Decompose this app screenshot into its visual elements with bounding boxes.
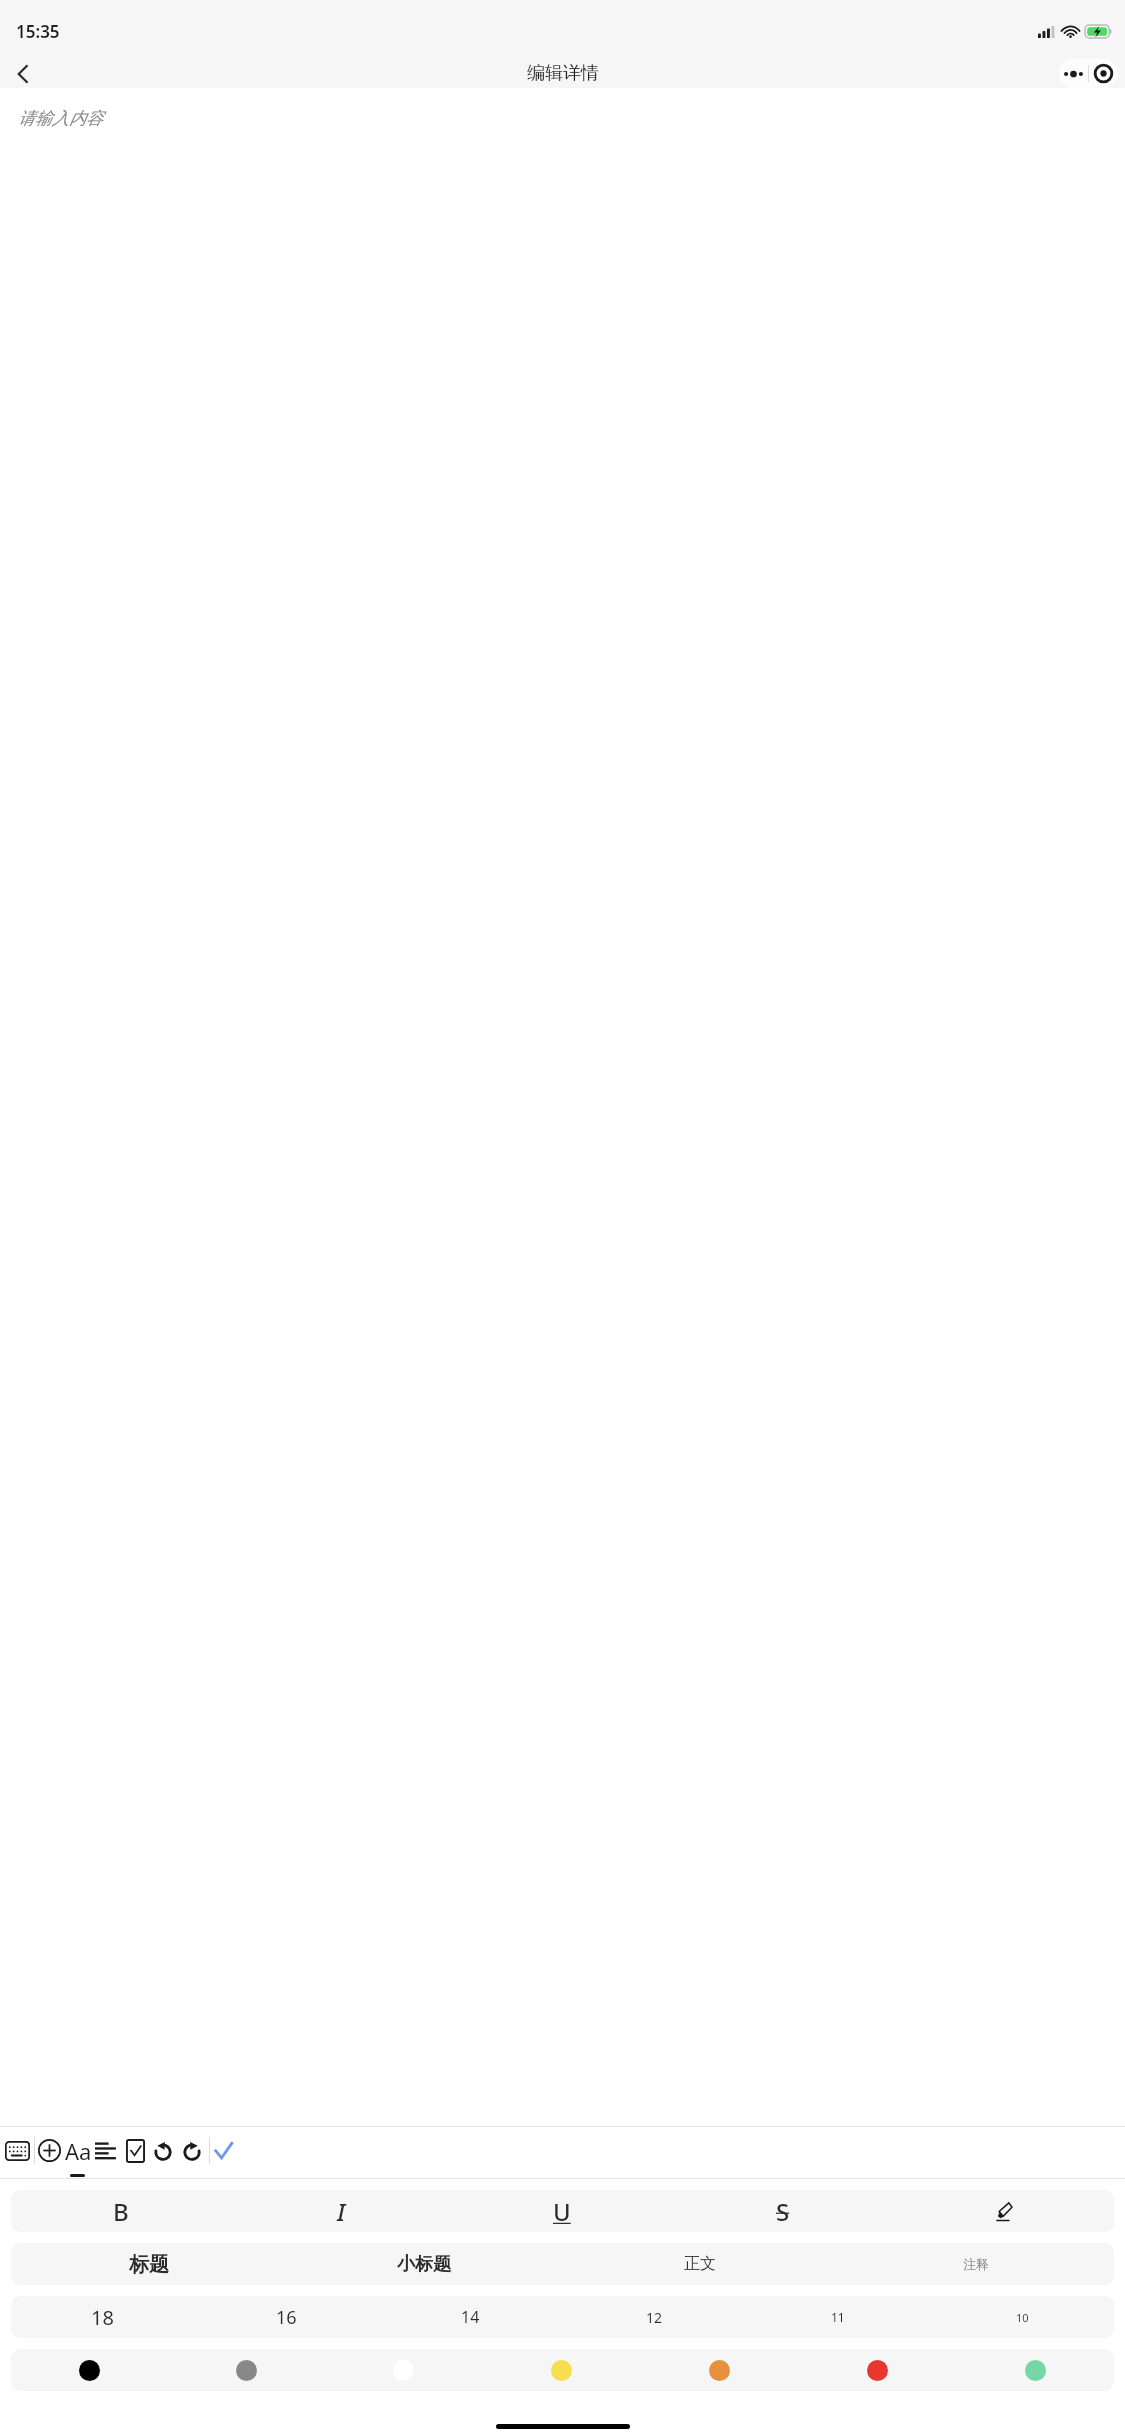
staticText: 15:35 [16,20,60,43]
button[interactable]: Caption [838,2243,1114,2285]
button[interactable]: Body [562,2243,838,2285]
button[interactable]: Color 5 [798,2349,956,2391]
button[interactable]: Color 1 [168,2349,325,2391]
button[interactable]: Align [85,2127,127,2174]
button[interactable]: Done [202,2127,244,2174]
button[interactable]: Insert [28,2127,70,2174]
button[interactable]: Undo [142,2127,184,2174]
button[interactable]: Color 4 [640,2349,798,2391]
button[interactable]: Color 6 [956,2349,1114,2391]
button[interactable]: Subtitle [286,2243,562,2285]
staticText: 注释 [963,2256,989,2272]
staticText: 14 [461,2306,480,2328]
staticText: 10 [1016,2310,1029,2325]
staticText: 11 [831,2309,845,2325]
button[interactable]: Color 0 [11,2349,168,2391]
button[interactable]: Strikethrough [672,2190,893,2232]
button[interactable]: Color 3 [482,2349,640,2391]
button[interactable]: Title [11,2243,286,2285]
button[interactable]: Size 11 [746,2296,930,2338]
staticText: 标题 [129,2252,169,2277]
button[interactable]: Checklist [114,2127,156,2174]
button[interactable]: Close [1089,59,1118,88]
staticText: U [553,2195,571,2228]
button[interactable]: Size 10 [930,2296,1114,2338]
staticText: 小标题 [397,2253,451,2276]
button[interactable]: Bold [11,2190,231,2232]
staticText: 16 [276,2305,297,2330]
staticText: 编辑详情 [527,62,599,85]
button[interactable]: Size 12 [562,2296,746,2338]
staticText: 正文 [684,2254,716,2274]
button[interactable]: Text style [57,2127,99,2174]
button[interactable]: Highlight [893,2190,1114,2232]
button[interactable]: Italic [231,2190,451,2232]
staticText: 18 [91,2304,114,2331]
staticText: 12 [646,2308,663,2327]
staticText: I [337,2195,346,2228]
staticText: 请输入内容 [18,108,103,129]
staticText: Aa [65,2136,92,2166]
button[interactable]: Underline [451,2190,672,2232]
button[interactable]: Size 16 [194,2296,378,2338]
button[interactable]: Size 14 [378,2296,562,2338]
button[interactable]: Redo [171,2127,213,2174]
button[interactable]: Back [0,59,48,88]
staticText: B [113,2195,129,2228]
button[interactable]: Size 18 [11,2296,194,2338]
button[interactable]: Keyboard [0,2127,38,2174]
button[interactable]: More [1059,59,1088,88]
staticText: S [776,2195,790,2228]
